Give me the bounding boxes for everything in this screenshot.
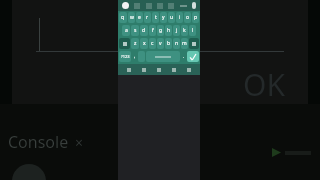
staticText: u xyxy=(170,14,174,21)
staticText: z xyxy=(134,40,137,47)
staticText: . xyxy=(183,53,185,60)
staticText: i xyxy=(179,14,181,21)
button[interactable]: Clipboard xyxy=(185,66,193,74)
button[interactable]: x xyxy=(140,38,148,49)
button[interactable]: Collapse keyboard xyxy=(125,66,133,74)
button[interactable]: n xyxy=(173,38,180,49)
staticText: w xyxy=(130,14,134,21)
button[interactable]: p xyxy=(192,12,199,23)
button[interactable]: q xyxy=(119,12,127,23)
staticText: e xyxy=(138,14,141,21)
staticText: k xyxy=(183,27,186,34)
button[interactable]: r xyxy=(144,12,151,23)
staticText: b xyxy=(167,40,171,47)
button[interactable]: w xyxy=(128,12,135,23)
button[interactable] xyxy=(121,2,179,9)
button[interactable]: Period xyxy=(181,51,186,62)
staticText: o xyxy=(186,14,190,21)
staticText: ?123 xyxy=(121,54,130,59)
button[interactable]: z xyxy=(131,38,139,49)
button[interactable]: Comma xyxy=(132,51,137,62)
button[interactable]: Enter xyxy=(187,51,199,62)
button[interactable] xyxy=(121,3,125,7)
staticText: h xyxy=(167,27,171,34)
staticText: v xyxy=(159,40,162,47)
button[interactable]: v xyxy=(157,38,164,49)
button[interactable] xyxy=(126,58,192,67)
button[interactable]: ?123 xyxy=(119,51,131,62)
staticText: An embedded page at pre view-1938999.pla… xyxy=(126,7,192,42)
staticText: p xyxy=(194,14,198,21)
button[interactable]: k xyxy=(181,25,188,36)
button[interactable]: OK xyxy=(243,64,285,105)
staticText: d xyxy=(142,27,146,34)
button[interactable]: y xyxy=(160,12,167,23)
button[interactable]: h xyxy=(165,25,172,36)
button[interactable]: More options xyxy=(191,3,197,9)
button[interactable]: d xyxy=(140,25,148,36)
button[interactable]: Google xyxy=(122,2,129,9)
staticText: f xyxy=(152,27,154,34)
button[interactable]: Backspace xyxy=(189,38,199,49)
button[interactable]: Back xyxy=(140,66,148,74)
staticText: n xyxy=(175,40,179,47)
button[interactable]: a xyxy=(122,25,130,36)
staticText: , xyxy=(134,53,136,60)
button[interactable]: e xyxy=(136,12,143,23)
staticText: Console xyxy=(8,131,69,153)
button[interactable]: Voice input xyxy=(192,2,196,9)
button[interactable]: Emoji xyxy=(138,51,145,62)
button[interactable]: l xyxy=(189,25,196,36)
staticText: t xyxy=(155,14,157,21)
staticText: x xyxy=(143,40,146,47)
staticText: l xyxy=(192,27,194,34)
button[interactable]: m xyxy=(181,38,188,49)
button[interactable]: u xyxy=(168,12,175,23)
staticText: y xyxy=(162,14,165,21)
button[interactable] xyxy=(128,3,132,7)
button[interactable]: b xyxy=(165,38,172,49)
staticText: q xyxy=(121,14,125,21)
button[interactable]: Tabs xyxy=(182,3,188,9)
button[interactable]: t xyxy=(152,12,159,23)
button[interactable]: Space xyxy=(146,51,180,62)
staticText: Enter your name: xyxy=(126,48,159,53)
staticText: c xyxy=(151,40,154,47)
button[interactable]: j xyxy=(173,25,180,36)
button[interactable] xyxy=(149,3,153,7)
button[interactable]: o xyxy=(184,12,191,23)
staticText: × xyxy=(75,133,84,152)
button[interactable]: Recents xyxy=(170,66,178,74)
staticText: Console × xyxy=(121,4,141,9)
staticText: r xyxy=(146,14,149,21)
staticText: j xyxy=(176,27,178,34)
button[interactable]: Shift xyxy=(119,38,130,49)
button[interactable]: f xyxy=(149,25,156,36)
button[interactable]: c xyxy=(149,38,156,49)
staticText: s xyxy=(134,27,137,34)
button[interactable]: Home xyxy=(155,66,163,74)
staticText: a xyxy=(125,27,128,34)
button[interactable]: i xyxy=(176,12,183,23)
staticText: m xyxy=(182,40,187,47)
button[interactable]: s xyxy=(131,25,139,36)
staticText: OK xyxy=(243,64,285,105)
button[interactable]: Console xyxy=(8,131,84,153)
button[interactable]: g xyxy=(157,25,164,36)
staticText: g xyxy=(159,27,163,34)
